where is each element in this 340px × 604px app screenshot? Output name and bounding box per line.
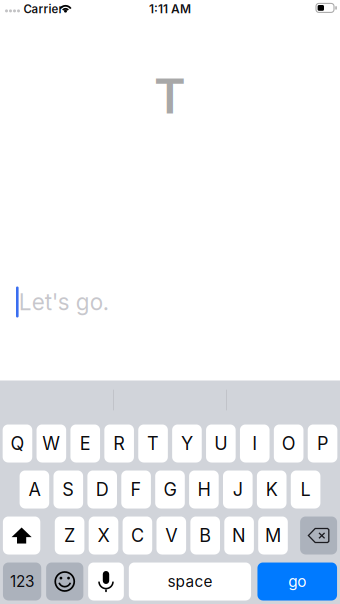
staticText: Carrier [24,2,64,16]
button[interactable]: S [53,470,83,508]
button[interactable]: Q [3,424,32,462]
button[interactable]: Emoji [46,562,83,600]
button[interactable]: G [155,470,185,508]
staticText: 1:11 AM [149,1,191,16]
button[interactable]: N [224,516,254,554]
staticText: K [266,479,278,500]
staticText: Y [181,433,193,454]
button[interactable]: A [20,470,49,508]
button[interactable]: space [129,562,251,600]
staticText: Q [10,433,24,454]
button[interactable]: W [37,424,66,462]
button[interactable]: M [258,516,288,554]
staticText: R [113,433,125,454]
staticText: V [165,525,177,546]
staticText: I [252,433,257,454]
staticText: Z [64,525,75,546]
button[interactable]: B [190,516,220,554]
staticText: H [197,479,210,500]
button[interactable]: 123 [3,562,41,600]
staticText: G [163,479,176,500]
staticText: 123 [10,572,34,591]
staticText: D [96,479,109,500]
staticText: T [154,67,186,125]
button[interactable]: D [87,470,117,508]
staticText: O [282,433,296,454]
button[interactable]: go [257,562,337,600]
staticText: A [28,479,40,500]
staticText: N [232,525,246,546]
button[interactable]: R [104,424,134,462]
staticText: space [167,572,212,591]
button[interactable]: Delete [300,516,337,554]
staticText: M [265,525,281,546]
staticText: S [62,479,74,500]
button[interactable]: H [189,470,219,508]
staticText: P [317,433,328,454]
staticText: J [233,479,243,500]
staticText: go [288,572,306,591]
button[interactable]: Dictation [88,562,124,600]
staticText: C [131,525,144,546]
button[interactable]: Y [172,424,202,462]
button[interactable]: T [138,424,168,462]
staticText: W [42,433,60,454]
button[interactable]: Z [55,516,84,554]
button[interactable]: F [121,470,151,508]
button[interactable]: K [257,470,286,508]
button[interactable]: E [70,424,100,462]
button[interactable]: L [291,470,320,508]
staticText: B [199,525,211,546]
staticText: L [301,479,311,500]
staticText: T [147,433,159,454]
button[interactable]: I [240,424,270,462]
staticText: U [214,433,227,454]
staticText: X [97,525,109,546]
button[interactable]: Shift [3,516,40,554]
button[interactable]: P [308,424,337,462]
button[interactable]: V [156,516,186,554]
staticText: E [80,433,91,454]
staticText: Let's go. [19,288,109,316]
button[interactable]: C [123,516,152,554]
button[interactable]: O [274,424,303,462]
button[interactable]: U [206,424,236,462]
button[interactable]: J [223,470,253,508]
button[interactable]: X [89,516,118,554]
staticText: F [131,479,142,500]
